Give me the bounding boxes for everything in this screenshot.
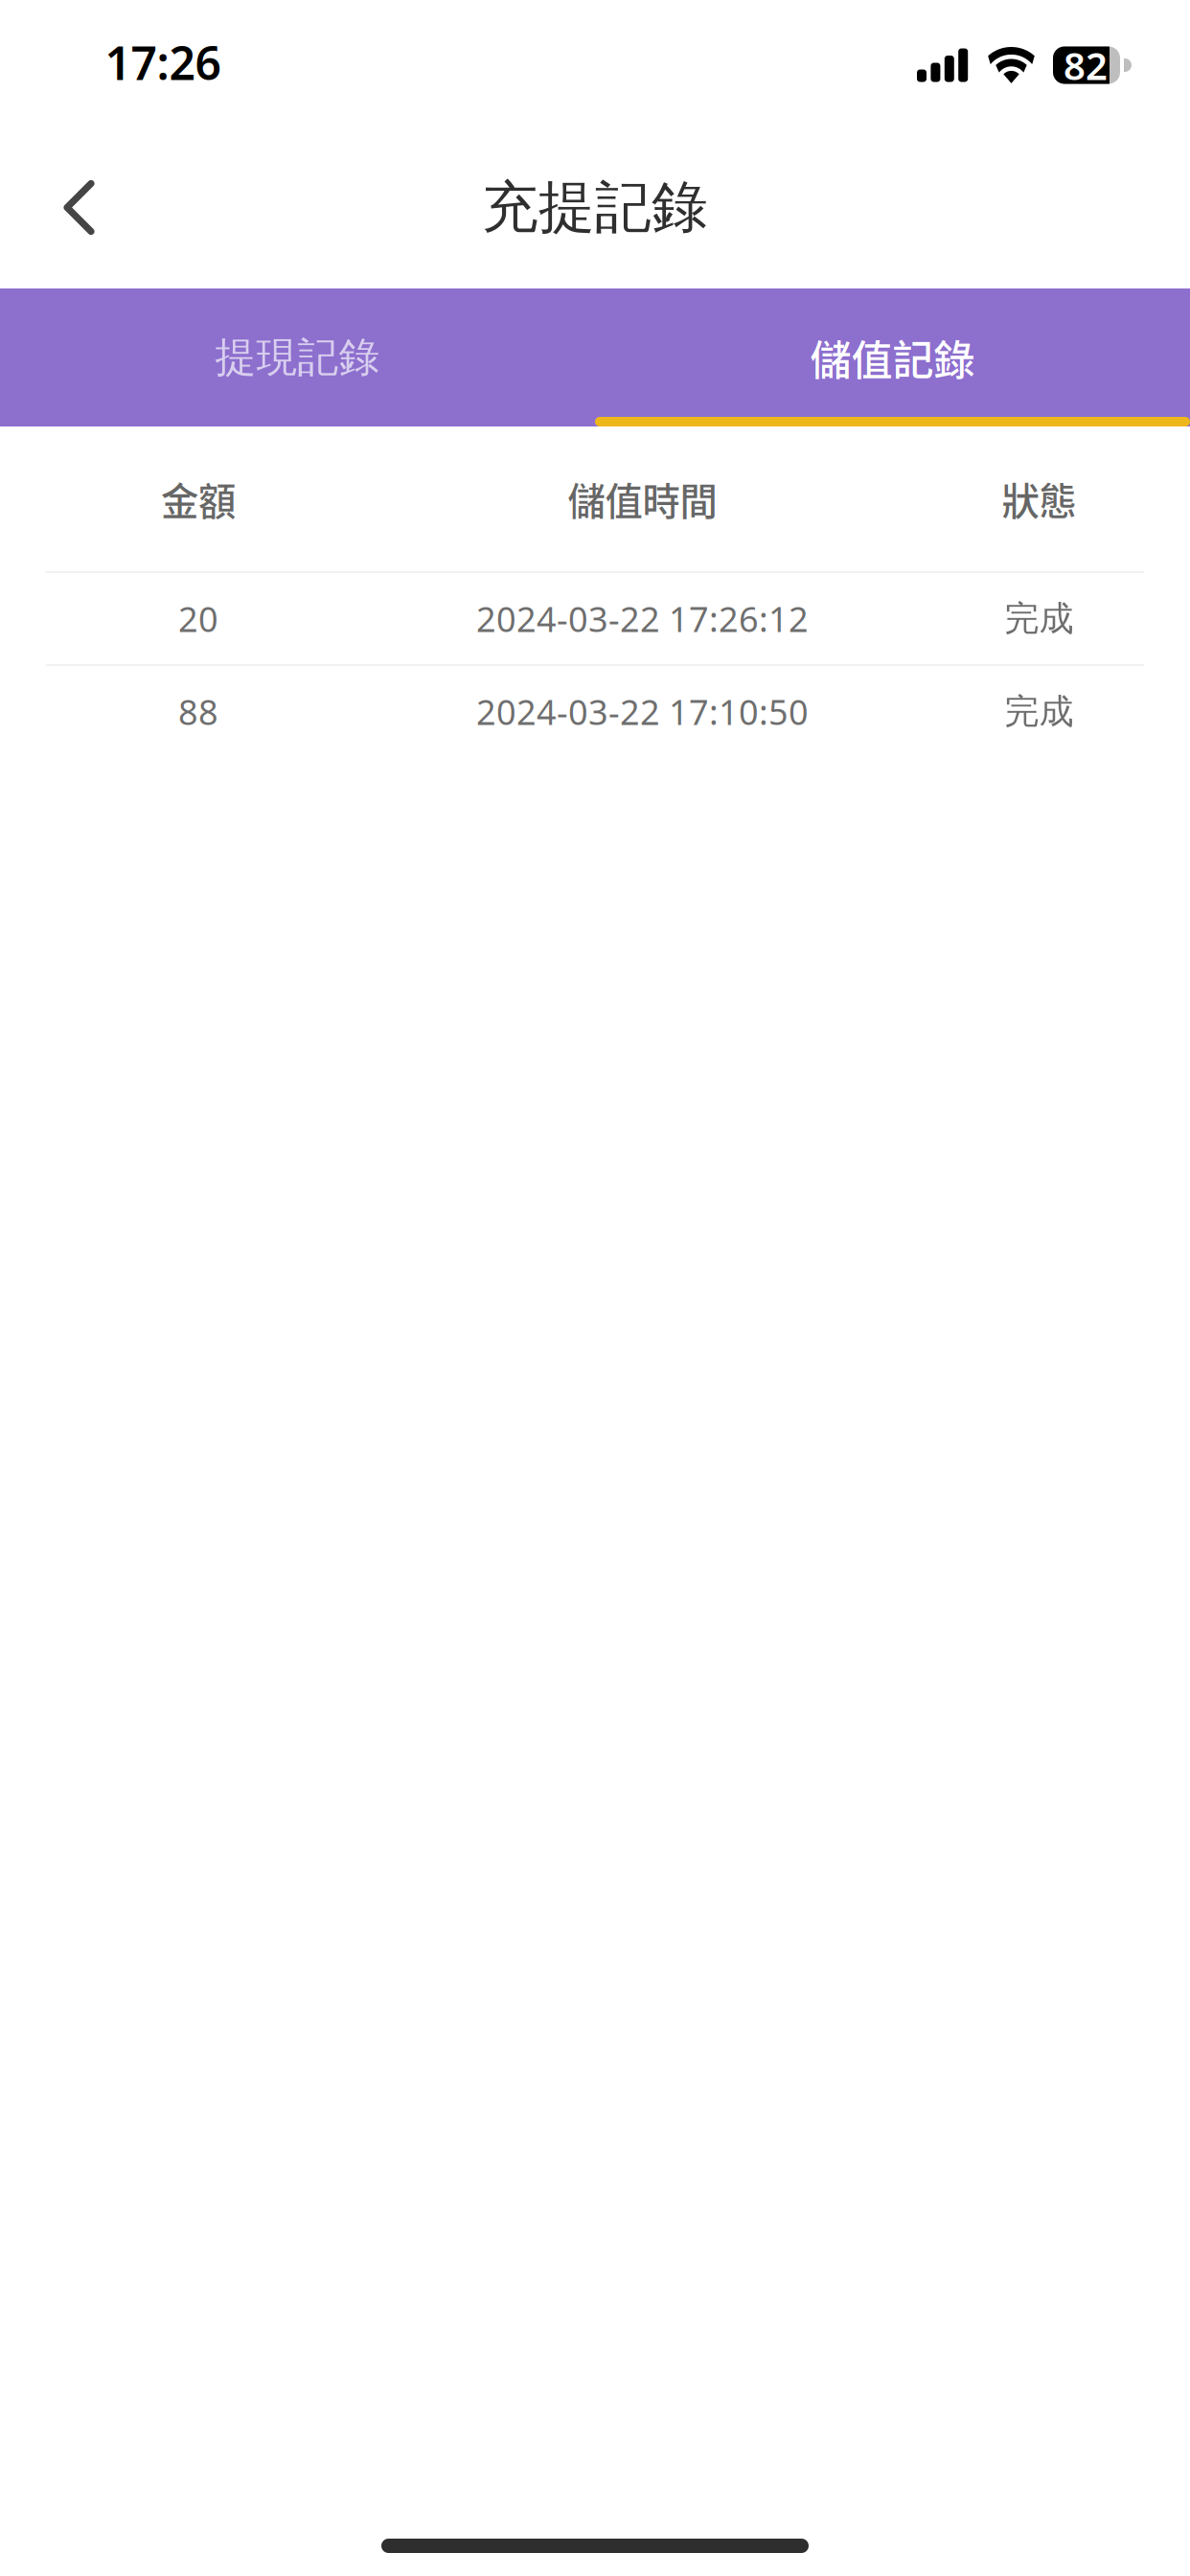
staticText: 完成 <box>1005 597 1074 640</box>
staticText: 提現記錄 <box>215 332 380 383</box>
button[interactable]: 提現記錄 <box>0 288 595 426</box>
button[interactable]: 88 <box>0 666 1190 757</box>
staticText: 2024-03-22 17:10:50 <box>476 689 809 734</box>
button[interactable]: 儲值記錄 <box>595 288 1190 426</box>
staticText: 20 <box>178 596 218 642</box>
staticText: 88 <box>178 689 218 734</box>
staticText: 82 <box>1064 40 1108 91</box>
staticText: 儲值記錄 <box>810 328 975 387</box>
staticText: 17:26 <box>105 32 221 93</box>
button[interactable]: 20 <box>0 573 1190 664</box>
staticText: 充提記錄 <box>482 173 708 242</box>
staticText: 金額 <box>161 471 236 526</box>
staticText: 狀態 <box>1002 471 1076 526</box>
staticText: 完成 <box>1005 690 1074 733</box>
staticText: 儲值時間 <box>568 471 717 526</box>
staticText: 2024-03-22 17:26:12 <box>476 596 809 642</box>
button[interactable]: Back <box>0 150 158 265</box>
